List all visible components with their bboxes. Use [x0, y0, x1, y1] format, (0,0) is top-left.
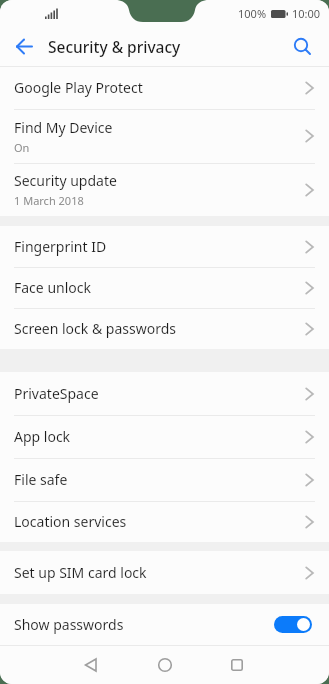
button[interactable]: App lock — [0, 415, 329, 458]
button[interactable]: PrivateSpace — [0, 372, 329, 415]
button[interactable] — [76, 651, 104, 679]
staticText: File safe — [14, 470, 68, 489]
button[interactable] — [290, 34, 314, 58]
staticText: Fingerprint ID — [14, 237, 107, 256]
button[interactable] — [274, 616, 312, 633]
staticText: Set up SIM card lock — [14, 563, 147, 582]
staticText: On — [14, 140, 30, 155]
button[interactable]: Security update — [0, 163, 329, 216]
staticText: Show passwords — [14, 615, 124, 634]
button[interactable]: Set up SIM card lock — [0, 551, 329, 594]
staticText: Screen lock & passwords — [14, 319, 176, 338]
button[interactable]: File safe — [0, 458, 329, 501]
button[interactable]: Fingerprint ID — [0, 226, 329, 267]
staticText: 100% — [238, 6, 267, 21]
staticText: Security update — [14, 171, 117, 190]
staticText: Google Play Protect — [14, 78, 143, 97]
button[interactable] — [223, 651, 251, 679]
staticText: 10:00 — [292, 6, 321, 21]
button[interactable]: Find My Device — [0, 109, 329, 163]
staticText: Security & privacy — [48, 36, 181, 57]
button[interactable]: Screen lock & passwords — [0, 308, 329, 349]
button[interactable] — [10, 32, 38, 60]
button[interactable]: Location services — [0, 501, 329, 542]
staticText: Location services — [14, 512, 127, 531]
staticText: 1 March 2018 — [14, 193, 84, 208]
staticText: PrivateSpace — [14, 384, 99, 403]
button[interactable] — [151, 651, 179, 679]
staticText: Face unlock — [14, 278, 91, 297]
button[interactable]: Show passwords — [0, 604, 329, 645]
staticText: App lock — [14, 427, 71, 446]
button[interactable]: Google Play Protect — [0, 66, 329, 109]
staticText: Find My Device — [14, 118, 113, 137]
button[interactable]: Face unlock — [0, 267, 329, 308]
